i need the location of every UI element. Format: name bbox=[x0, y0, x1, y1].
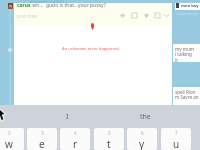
staticText: 2 bbox=[8, 130, 11, 136]
staticText: 4 bbox=[74, 130, 77, 136]
button[interactable]: 6 bbox=[127, 128, 157, 150]
button[interactable]: 3 bbox=[27, 128, 57, 150]
button[interactable]: my mum i talking it bbox=[173, 44, 200, 62]
staticText: t bbox=[107, 137, 111, 150]
staticText: I bbox=[66, 112, 69, 122]
staticText: An unknown error happened. bbox=[62, 46, 120, 52]
button[interactable]: the bbox=[120, 105, 170, 128]
button[interactable]: I bbox=[42, 105, 92, 128]
staticText: spell Rion m Savre an bbox=[175, 89, 199, 101]
staticText: wh... gudo is that...your pussy? bbox=[31, 2, 106, 9]
staticText: e bbox=[39, 137, 45, 150]
button[interactable]: Reply bbox=[118, 11, 127, 20]
staticText: drive.google.com/file/d/... bbox=[30, 0, 67, 3]
button[interactable]: 2 bbox=[0, 128, 24, 150]
button[interactable]: Like bbox=[142, 11, 151, 20]
staticText: 6 bbox=[141, 130, 144, 136]
staticText: the bbox=[140, 112, 151, 122]
button[interactable] bbox=[175, 3, 200, 10]
staticText: 5 bbox=[108, 130, 111, 136]
staticText: 7 bbox=[175, 130, 178, 136]
staticText: my mum i talking it bbox=[175, 46, 194, 64]
button[interactable]: Profile photo bbox=[8, 3, 13, 9]
button[interactable]: 7 bbox=[161, 128, 191, 150]
button[interactable]: 5 bbox=[94, 128, 124, 150]
staticText: mea boy bbox=[181, 3, 199, 9]
staticText: carus bbox=[17, 2, 31, 9]
staticText: y bbox=[139, 137, 145, 150]
staticText: w bbox=[5, 137, 13, 150]
staticText: just now bbox=[17, 13, 37, 20]
button[interactable]: Copy bbox=[130, 11, 139, 20]
staticText: 3 bbox=[41, 130, 44, 136]
staticText: u bbox=[173, 137, 180, 150]
staticText: r bbox=[73, 137, 78, 150]
button[interactable]: 4 bbox=[60, 128, 90, 150]
staticText: Lorem ipsum dolor sit bbox=[177, 11, 200, 16]
button[interactable]: Expand bbox=[162, 11, 171, 20]
button[interactable]: Scroll bbox=[8, 48, 12, 52]
button[interactable]: More bbox=[153, 11, 162, 20]
button[interactable]: spell Rion m Savre an bbox=[173, 87, 200, 105]
